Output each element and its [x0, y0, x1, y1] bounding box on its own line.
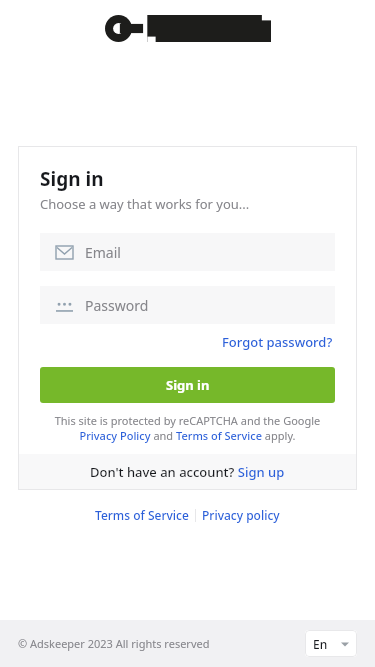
staticText: © Adskeeper 2023 All rights reserved	[18, 636, 210, 651]
staticText: En	[313, 636, 328, 652]
button[interactable]: En	[305, 630, 357, 657]
button[interactable]: Password	[40, 286, 335, 324]
button[interactable]: Email	[40, 233, 335, 271]
button[interactable]: Terms of Service	[89, 505, 195, 525]
staticText: Email	[85, 243, 121, 262]
staticText: Choose a way that works for you...	[40, 195, 250, 213]
staticText: Sign in	[40, 166, 104, 192]
button[interactable]: Sign in	[40, 367, 335, 403]
staticText: This site is protected by reCAPTCHA and …	[40, 413, 335, 443]
staticText: Sign in	[166, 376, 210, 394]
staticText: Terms of Service	[95, 507, 189, 523]
staticText: Don't have an account? Sign up	[90, 463, 285, 481]
other: Select language	[341, 640, 349, 648]
button[interactable]: Privacy policy	[196, 505, 286, 525]
staticText: Password	[85, 296, 149, 315]
button[interactable]: Don't have an account? Sign up	[18, 454, 357, 490]
staticText: Privacy policy	[202, 507, 280, 523]
button[interactable]: Forgot password?	[220, 331, 335, 353]
staticText: Forgot password?	[222, 333, 333, 351]
